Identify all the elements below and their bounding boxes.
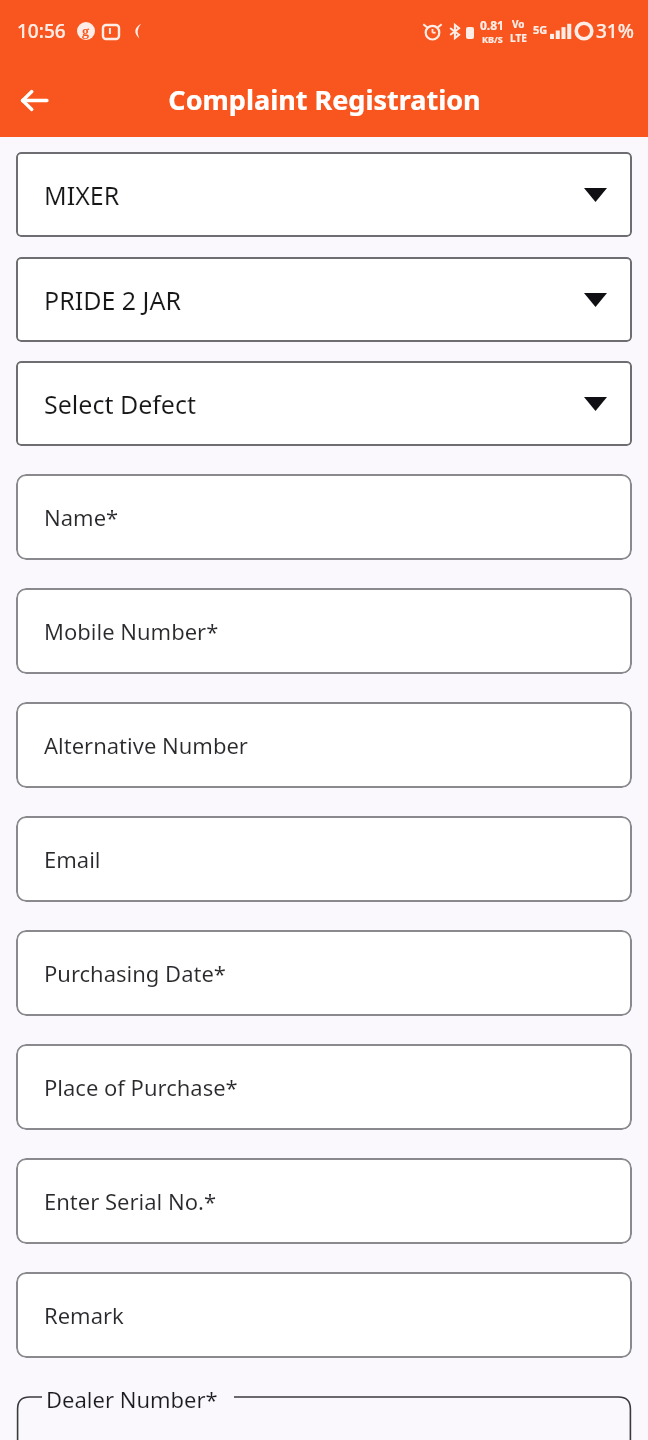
staticText: Name*	[44, 502, 119, 532]
staticText: Email	[44, 844, 101, 874]
staticText: LTE	[510, 31, 527, 45]
staticText: Complaint Registration	[168, 81, 481, 118]
staticText: Mobile Number*	[44, 616, 219, 646]
staticText: Select Defect	[44, 387, 196, 421]
staticText: KB/S	[482, 33, 503, 45]
button[interactable]: Name*	[16, 474, 632, 560]
staticText: PRIDE 2 JAR	[44, 283, 181, 317]
staticText: 5G	[533, 22, 548, 37]
staticText: Alternative Number	[44, 730, 248, 760]
staticText: 31%	[596, 18, 634, 44]
staticText: 10:56	[17, 18, 66, 44]
staticText: Dealer Number*	[46, 1384, 218, 1414]
staticText: Remark	[44, 1300, 124, 1330]
button[interactable]: Select Defect	[16, 361, 632, 446]
button[interactable]: Remark	[16, 1272, 632, 1358]
button[interactable]: Back	[8, 74, 60, 126]
button[interactable]: PRIDE 2 JAR	[16, 257, 632, 342]
button[interactable]: MIXER	[16, 152, 632, 237]
staticText: Purchasing Date*	[44, 958, 226, 988]
button[interactable]: Alternative Number	[16, 702, 632, 788]
staticText: g	[82, 22, 90, 40]
button[interactable]: Email	[16, 816, 632, 902]
staticText: Enter Serial No.*	[44, 1186, 217, 1216]
staticText: 0.81	[480, 17, 504, 33]
staticText: MIXER	[44, 178, 120, 212]
staticText: Vo	[512, 17, 525, 31]
button[interactable]: Purchasing Date*	[16, 930, 632, 1016]
button[interactable]: Enter Serial No.*	[16, 1158, 632, 1244]
button[interactable]: Mobile Number*	[16, 588, 632, 674]
button[interactable]: Place of Purchase*	[16, 1044, 632, 1130]
staticText: Place of Purchase*	[44, 1072, 238, 1102]
button[interactable]: Dealer Number*	[16, 1384, 632, 1440]
